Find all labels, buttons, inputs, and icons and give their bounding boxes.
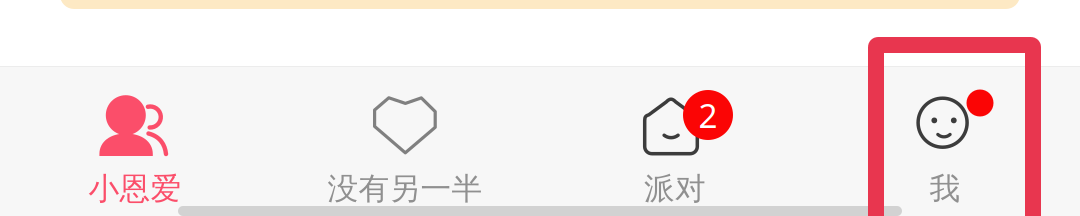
button[interactable]: 没有另一半 — [270, 66, 540, 216]
button[interactable]: 小恩爱 — [0, 66, 270, 216]
staticText: 没有另一半 — [327, 170, 482, 208]
staticText: 小恩爱 — [88, 170, 181, 208]
staticText: 派对 — [644, 170, 706, 208]
button[interactable]: 我 — [810, 66, 1080, 216]
staticText: 2 — [698, 93, 717, 137]
button[interactable]: 派对 — [540, 66, 810, 216]
staticText: 我 — [929, 170, 960, 208]
